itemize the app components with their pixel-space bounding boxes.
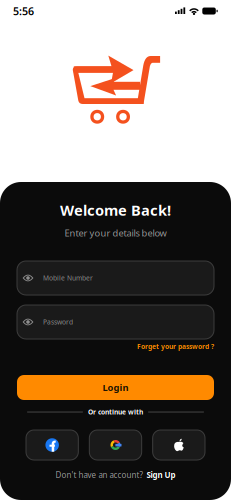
staticText: Welcome Back! (60, 200, 171, 220)
staticText: Password (43, 318, 73, 326)
button[interactable]: Password (17, 305, 214, 339)
button[interactable]: Continue with Apple (153, 430, 205, 460)
button[interactable]: Continue with Facebook (26, 430, 78, 460)
staticText: Or continue with (88, 408, 143, 416)
button[interactable]: Login (17, 375, 214, 400)
staticText: Forget your password ? (137, 342, 214, 351)
staticText: Sign Up (146, 470, 175, 480)
staticText: Login (102, 381, 128, 394)
button[interactable]: Mobile Number (17, 261, 214, 295)
staticText: 5:56 (13, 4, 34, 18)
button[interactable]: Forget your password ? (137, 342, 214, 351)
staticText: Enter your details below (64, 227, 166, 239)
button[interactable]: Continue with Google (89, 430, 142, 460)
staticText: Mobile Number (43, 274, 93, 282)
button[interactable]: Sign Up (146, 470, 175, 480)
staticText: Don't have an account? (55, 470, 142, 480)
